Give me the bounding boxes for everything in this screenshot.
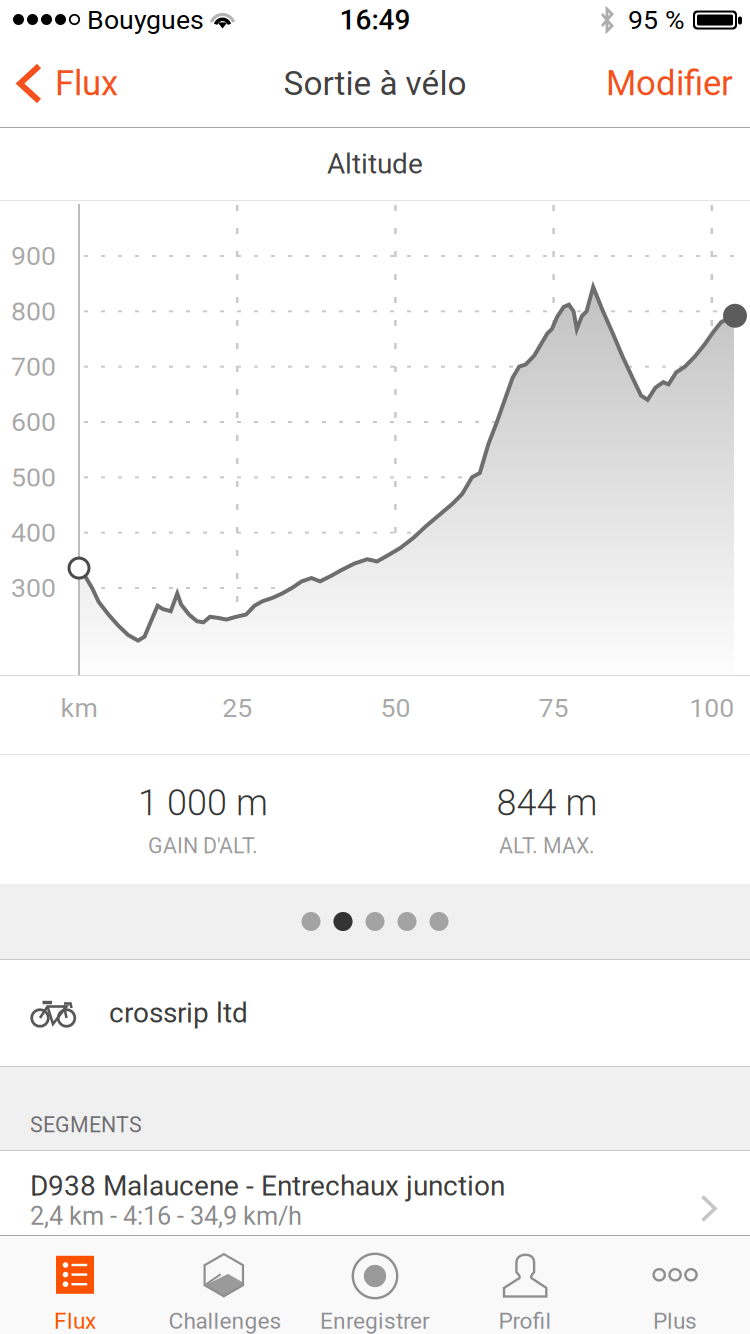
staticText: D938 Malaucene - Entrechaux junction — [30, 1170, 505, 1202]
button[interactable]: D938 Malaucene - Entrechaux junction — [0, 1151, 750, 1235]
staticText: Plus — [653, 1308, 697, 1334]
staticText: 500 — [11, 462, 56, 493]
button[interactable]: Flux — [0, 1236, 150, 1334]
staticText: 16:49 — [339, 4, 410, 36]
staticText: 25 — [222, 692, 252, 724]
staticText: 700 — [11, 351, 56, 382]
staticText: GAIN D'ALT. — [148, 833, 258, 858]
staticText: Challenges — [168, 1308, 281, 1334]
staticText: 2,4 km - 4:16 - 34,9 km/h — [30, 1201, 302, 1231]
staticText: 600 — [11, 406, 56, 438]
staticText: km — [60, 692, 97, 724]
staticText: crossrip ltd — [109, 997, 248, 1029]
staticText: Profil — [498, 1308, 551, 1334]
staticText: 844 m — [496, 782, 597, 824]
staticText: Modifier — [606, 63, 733, 104]
button[interactable]: Plus — [600, 1236, 750, 1334]
button[interactable]: crossrip ltd — [0, 960, 750, 1066]
staticText: ALT. MAX. — [499, 833, 595, 858]
staticText: Flux — [54, 1308, 96, 1334]
staticText: Flux — [55, 63, 118, 104]
staticText: Altitude — [327, 148, 423, 180]
staticText: 400 — [11, 517, 56, 548]
staticText: 300 — [11, 572, 56, 604]
button[interactable]: Profil — [450, 1236, 600, 1334]
button[interactable]: Challenges — [150, 1236, 300, 1334]
staticText: Enregistrer — [320, 1308, 430, 1334]
staticText: 50 — [380, 692, 410, 724]
staticText: Sortie à vélo — [283, 64, 466, 103]
staticText: 95 % — [628, 4, 685, 36]
staticText: 900 — [11, 240, 56, 272]
button[interactable]: Enregistrer — [300, 1236, 450, 1334]
button[interactable]: Flux — [0, 40, 130, 127]
button[interactable]: Modifier — [0, 40, 170, 127]
staticText: 1 000 m — [138, 782, 268, 824]
staticText: 75 — [539, 692, 569, 724]
staticText: Bouygues — [87, 4, 204, 36]
staticText: SEGMENTS — [30, 1112, 142, 1137]
staticText: 100 — [689, 692, 734, 724]
staticText: 800 — [11, 296, 56, 327]
